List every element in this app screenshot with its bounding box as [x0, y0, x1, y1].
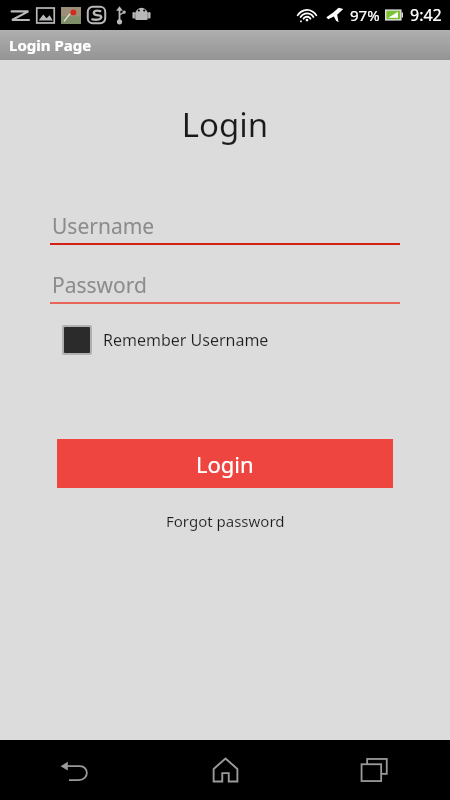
button[interactable]: Recent apps [300, 740, 450, 800]
staticText: 97% [350, 5, 380, 25]
staticText: Login [0, 102, 450, 147]
button[interactable]: Remember Username [62, 325, 269, 355]
staticText: Password [52, 271, 147, 300]
button[interactable]: Password [50, 269, 400, 304]
button[interactable]: Login [57, 439, 393, 488]
staticText: Login [196, 449, 254, 479]
staticText: Forgot password [166, 511, 285, 531]
staticText: Username [52, 212, 155, 241]
staticText: 9:42 [410, 4, 442, 26]
button[interactable]: Forgot password [158, 509, 293, 533]
button[interactable]: Home [150, 740, 300, 800]
staticText: Remember Username [103, 329, 269, 351]
staticText: Login Page [9, 35, 92, 55]
button[interactable]: Username [50, 210, 400, 245]
button[interactable]: Back [0, 740, 150, 800]
